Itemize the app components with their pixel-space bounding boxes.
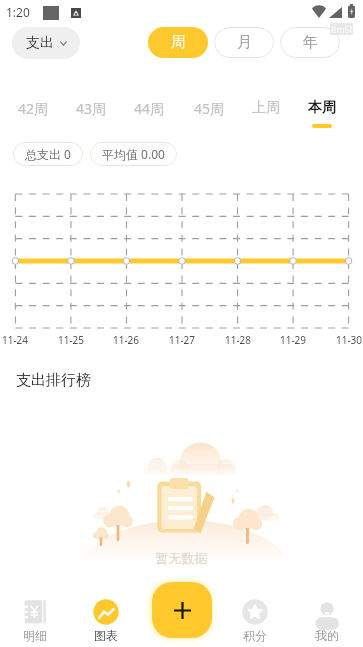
button[interactable]: 上周 xyxy=(242,99,290,124)
staticText: 11-28 xyxy=(218,333,258,347)
staticText: 11-24 xyxy=(0,333,35,347)
staticText: 11-27 xyxy=(162,333,202,347)
button[interactable]: 年 xyxy=(280,27,340,58)
button[interactable]: 本周 xyxy=(298,99,346,128)
button[interactable]: 42周 xyxy=(9,99,57,125)
button[interactable]: 周 xyxy=(148,27,208,58)
staticText: 年 xyxy=(303,33,318,52)
staticText: 11-25 xyxy=(51,333,91,347)
button[interactable]: 总支出 0 xyxy=(13,142,83,166)
button[interactable]: 支出 xyxy=(12,27,80,59)
staticText: 支出 xyxy=(26,34,54,52)
button[interactable]: 我的 xyxy=(303,599,351,643)
button[interactable]: 平均值 0.00 xyxy=(90,142,177,166)
staticText: 1:20 xyxy=(6,4,30,20)
button[interactable]: 44周 xyxy=(125,99,173,125)
staticText: 图表 xyxy=(82,628,130,643)
button[interactable]: 月 xyxy=(214,27,274,58)
staticText: 45周 xyxy=(185,99,233,118)
staticText: 明细 xyxy=(11,628,59,643)
staticText: 平均值 0.00 xyxy=(102,146,165,162)
staticText: 43周 xyxy=(67,99,115,118)
button[interactable]: 45周 xyxy=(185,99,233,125)
staticText: 11-26 xyxy=(106,333,146,347)
staticText: 44周 xyxy=(125,99,173,118)
staticText: 本周 xyxy=(298,99,346,117)
staticText: 月 xyxy=(237,33,252,52)
staticText: 11-29 xyxy=(273,333,313,347)
staticText: 8m6l xyxy=(331,23,353,35)
button[interactable]: 图表 xyxy=(82,599,130,643)
staticText: 11-30 xyxy=(329,333,363,347)
staticText: 积分 xyxy=(231,628,279,643)
button[interactable]: 明细 xyxy=(11,599,59,643)
staticText: 总支出 0 xyxy=(25,146,71,162)
button[interactable]: Add record xyxy=(152,582,212,638)
staticText: 上周 xyxy=(242,99,290,117)
button[interactable]: 43周 xyxy=(67,99,115,125)
staticText: 支出排行榜 xyxy=(16,371,91,390)
button[interactable]: 积分 xyxy=(231,599,279,643)
staticText: 周 xyxy=(171,33,186,52)
staticText: 暂无数据 xyxy=(0,550,363,566)
staticText: 42周 xyxy=(9,99,57,118)
staticText: 我的 xyxy=(303,628,351,643)
